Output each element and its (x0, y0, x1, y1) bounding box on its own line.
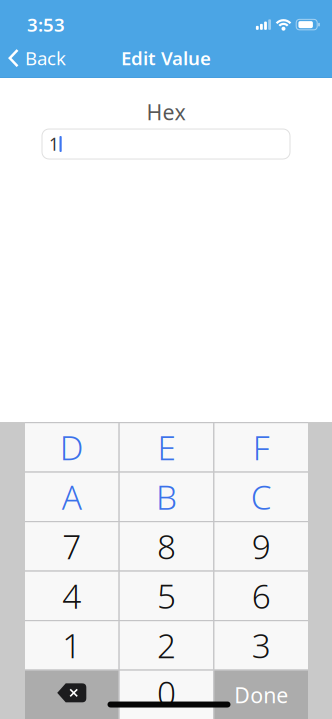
staticText: A (62, 475, 82, 519)
button[interactable]: E (120, 423, 213, 471)
staticText: 3:53 (27, 12, 65, 37)
staticText: D (60, 425, 84, 469)
button[interactable]: Hex value (42, 129, 290, 159)
staticText: 6 (252, 574, 271, 618)
button[interactable]: Done (214, 671, 308, 719)
button[interactable]: 5 (120, 572, 213, 620)
staticText: 1 (62, 623, 81, 667)
staticText: 8 (157, 524, 176, 568)
staticText: B (156, 475, 177, 519)
staticText: 5 (157, 574, 176, 618)
button[interactable]: 7 (25, 522, 118, 570)
button[interactable]: F (214, 423, 308, 471)
staticText: 9 (252, 524, 271, 568)
button[interactable]: 9 (214, 522, 308, 570)
button[interactable]: D (25, 423, 118, 471)
staticText: Back (25, 46, 66, 70)
button[interactable]: 2 (120, 621, 213, 669)
button[interactable]: 3 (214, 621, 308, 669)
staticText: C (251, 475, 272, 519)
button[interactable]: 8 (120, 522, 213, 570)
button[interactable]: B (120, 473, 213, 521)
button[interactable]: 6 (214, 572, 308, 620)
button[interactable]: 1 (25, 621, 118, 669)
staticText: F (253, 425, 270, 469)
staticText: 7 (62, 524, 81, 568)
button[interactable]: Delete (25, 671, 118, 719)
button[interactable]: 0 (120, 671, 213, 719)
staticText: 2 (157, 623, 176, 667)
button[interactable]: 4 (25, 572, 118, 620)
staticText: Done (234, 681, 288, 709)
staticText: 0 (157, 671, 176, 715)
staticText: 1 (49, 132, 59, 155)
staticText: Edit Value (121, 46, 211, 70)
staticText: E (157, 425, 175, 469)
button[interactable]: A (25, 473, 118, 521)
button[interactable]: Back (0, 46, 66, 70)
staticText: 3 (252, 623, 271, 667)
button[interactable]: C (214, 473, 308, 521)
staticText: 4 (62, 574, 81, 618)
staticText: Hex (146, 98, 185, 126)
